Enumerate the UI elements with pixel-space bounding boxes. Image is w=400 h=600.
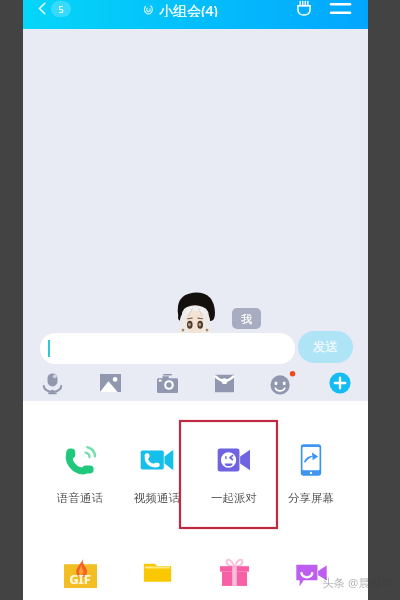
button[interactable]: Album (210, 369, 238, 397)
staticText: 分享屏幕 (288, 491, 334, 505)
staticText: 视频通话 (134, 491, 180, 505)
button[interactable]: 分享屏幕 (277, 443, 345, 509)
button[interactable]: Video message (289, 551, 333, 595)
staticText: 发送 (313, 339, 338, 355)
button[interactable]: 语音通话 (46, 443, 114, 509)
button[interactable]: Voice message (38, 369, 66, 397)
button[interactable]: Add (326, 369, 354, 397)
button[interactable]: Message input (40, 333, 295, 364)
staticText: 小组会(4) (159, 1, 218, 17)
staticText: 语音通话 (57, 491, 103, 505)
button[interactable]: Photos (96, 369, 124, 397)
button[interactable]: Raise hand (296, 0, 312, 15)
button[interactable]: GIF (58, 551, 102, 595)
staticText: 一起派对 (211, 491, 257, 505)
staticText: GIF (69, 570, 91, 588)
button[interactable]: Emoji (268, 369, 296, 397)
button[interactable]: 视频通话 (123, 443, 191, 509)
button[interactable]: Camera (153, 369, 181, 397)
button[interactable]: Menu (331, 3, 350, 14)
button[interactable]: 发送 (298, 331, 353, 363)
staticText: 5 (58, 3, 64, 15)
staticText: 头条 @晨捏早 (322, 575, 393, 591)
button[interactable]: Files (135, 550, 179, 594)
button[interactable]: Gift (212, 551, 256, 595)
staticText: 我 (241, 312, 252, 326)
button[interactable]: 一起派对 (200, 443, 268, 509)
button[interactable]: Back (38, 0, 71, 17)
